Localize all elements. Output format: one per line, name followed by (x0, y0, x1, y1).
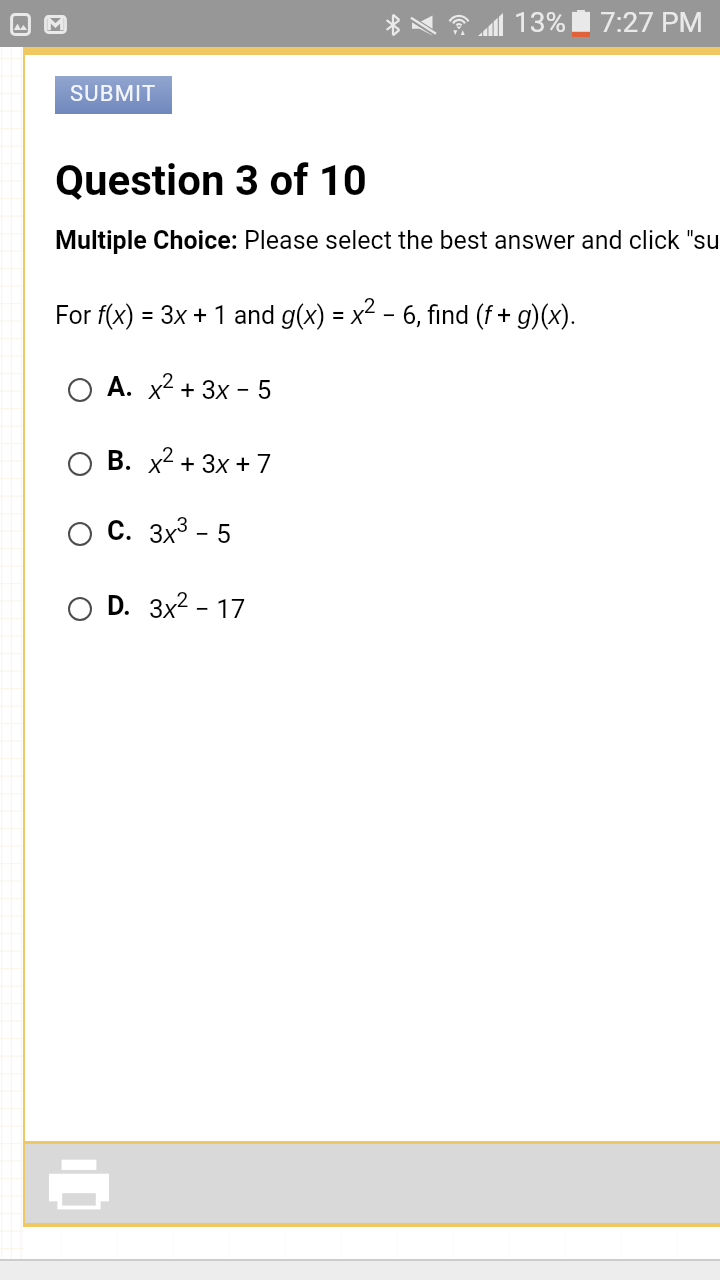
staticText: x2 + 3x − 5 (149, 369, 272, 405)
button[interactable]: B. (0, 438, 720, 490)
staticText: C. (107, 515, 133, 547)
staticText: D. (107, 590, 131, 622)
button[interactable]: Print (49, 1157, 109, 1211)
staticText: 3x3 − 5 (149, 513, 231, 549)
button[interactable]: A. (0, 364, 720, 416)
staticText: B. (107, 445, 133, 477)
staticText: A. (107, 371, 134, 403)
staticText: x2 + 3x + 7 (149, 443, 272, 479)
staticText: Question 3 of 10 (55, 156, 367, 205)
button[interactable]: SUBMIT (55, 76, 172, 114)
staticText: 13% (514, 6, 566, 39)
staticText: 3x2 − 17 (149, 588, 246, 624)
staticText: For f(x) = 3x + 1 and g(x) = x2 − 6, fin… (55, 294, 720, 330)
staticText: Multiple Choice: Please select the best … (55, 226, 720, 255)
staticText: 7:27 PM (600, 6, 704, 39)
button[interactable]: C. (0, 508, 720, 560)
staticText: SUBMIT (70, 81, 157, 107)
button[interactable]: D. (0, 583, 720, 635)
